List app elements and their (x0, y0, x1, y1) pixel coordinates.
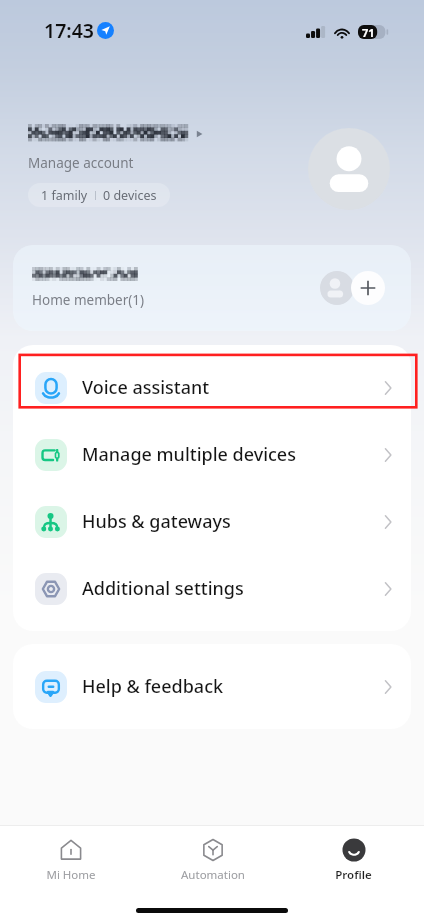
button[interactable]: Help & feedback (13, 653, 411, 720)
button[interactable]: Home member(1) (13, 245, 411, 331)
staticText: 71 (362, 25, 375, 39)
staticText: Additional settings (82, 576, 244, 601)
staticText: Automation (181, 867, 245, 883)
button[interactable]: Add family member (351, 271, 385, 305)
staticText: 0 devices (103, 187, 157, 204)
staticText: Help & feedback (82, 674, 224, 699)
button[interactable]: Additional settings (13, 555, 411, 622)
staticText: Profile (335, 867, 372, 883)
staticText: Mi Home (46, 867, 96, 883)
button[interactable]: Profile (283, 836, 424, 885)
button[interactable]: Manage multiple devices (13, 421, 411, 488)
staticText: 1 family (41, 187, 88, 204)
staticText: Voice assistant (82, 375, 210, 400)
staticText: Hubs & gateways (82, 509, 231, 534)
button[interactable]: Automation (142, 836, 283, 885)
button[interactable]: Mi Home (0, 836, 142, 885)
staticText: Manage multiple devices (82, 442, 296, 467)
button[interactable]: Hubs & gateways (13, 488, 411, 555)
staticText: Manage account (28, 154, 134, 172)
staticText: 17:43 (44, 17, 94, 44)
button[interactable]: 1 family (28, 183, 170, 207)
staticText: Home member(1) (32, 291, 145, 309)
button[interactable]: Voice assistant (13, 354, 411, 421)
button[interactable]: Profile avatar (308, 128, 390, 210)
